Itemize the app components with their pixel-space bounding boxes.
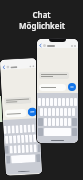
button[interactable]: Senden (36, 38, 79, 144)
button[interactable]: Senden (0, 57, 43, 177)
button[interactable]: Senden (27, 107, 37, 117)
staticText: Möglichkeit (19, 20, 65, 31)
button[interactable] (5, 109, 27, 118)
staticText: Chat (32, 9, 51, 20)
button[interactable]: Senden (68, 83, 76, 91)
button[interactable] (39, 84, 66, 91)
